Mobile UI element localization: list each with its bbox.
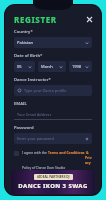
staticText: DANCE IKON 3 SWAG bbox=[18, 182, 88, 190]
button[interactable]: Pakistan bbox=[14, 37, 92, 48]
staticText: Date of Birth* bbox=[14, 53, 43, 59]
staticText: #IDEAL PARTNERS DJ bbox=[37, 175, 70, 179]
staticText: 1998 bbox=[72, 64, 85, 69]
staticText: Type your Dance profile bbox=[24, 88, 89, 93]
button[interactable]: Your Email Address bbox=[14, 109, 92, 120]
staticText: Enter your password bbox=[17, 136, 85, 141]
staticText: Dance Instructor* bbox=[14, 77, 51, 83]
button[interactable]: Terms and Conditions bbox=[48, 150, 85, 155]
staticText: Country* bbox=[14, 29, 33, 35]
staticText: I agree with the bbox=[22, 150, 48, 155]
staticText: EMAIL bbox=[14, 101, 27, 107]
button[interactable]: #IDEAL PARTNERS DJ bbox=[11, 170, 95, 194]
staticText: Password bbox=[14, 125, 34, 131]
button[interactable]: Type your Dance profile bbox=[14, 85, 92, 96]
button[interactable]: 05 bbox=[14, 61, 35, 72]
button[interactable]: 1998 bbox=[69, 61, 92, 72]
staticText: Pakistan bbox=[17, 40, 85, 45]
button[interactable]: & Privacy bbox=[85, 150, 92, 165]
button[interactable]: Close bbox=[83, 13, 95, 25]
button[interactable]: March bbox=[38, 61, 66, 72]
staticText: March bbox=[41, 64, 59, 69]
staticText: Your Email Address bbox=[17, 112, 89, 117]
button[interactable]: Enter your password bbox=[14, 133, 92, 144]
staticText: Policy of Dance Ikon Studio bbox=[22, 165, 66, 170]
staticText: REGISTER bbox=[14, 14, 57, 25]
staticText: 05 bbox=[17, 64, 28, 69]
